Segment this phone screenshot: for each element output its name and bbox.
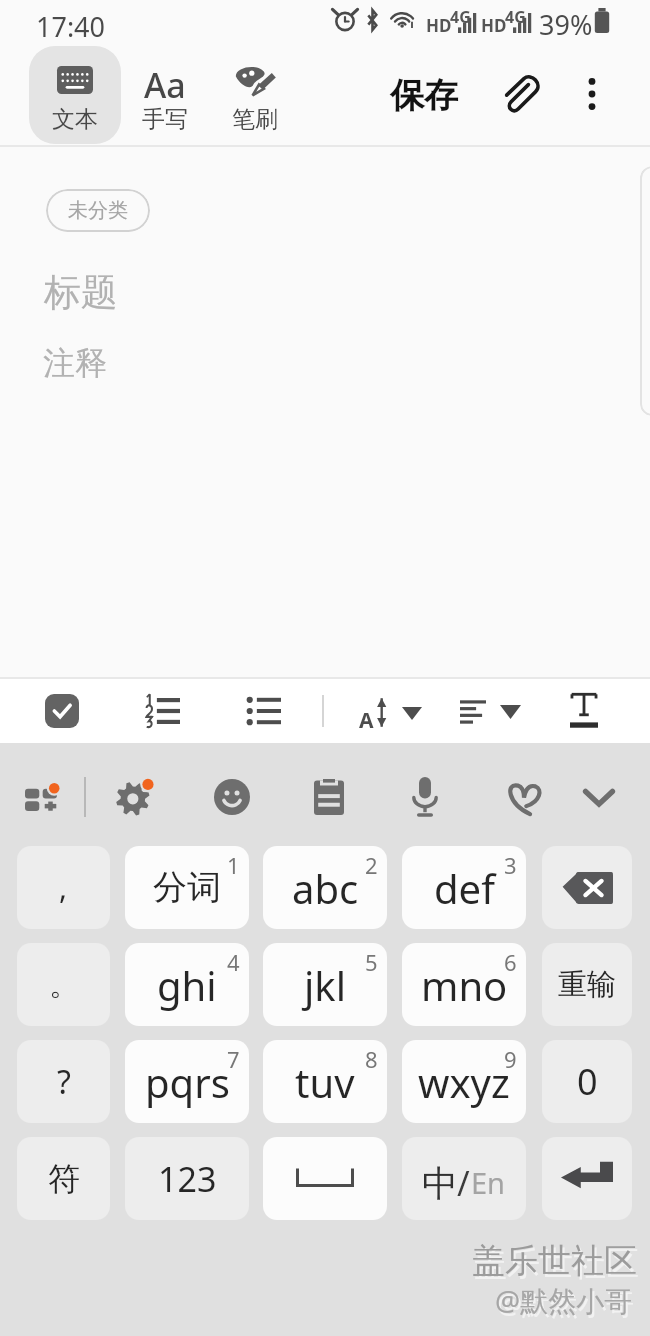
button[interactable]: Emoji bbox=[211, 776, 253, 818]
button[interactable]: 保存 bbox=[382, 68, 466, 122]
button[interactable]: More options bbox=[568, 70, 616, 118]
button[interactable]: jkl bbox=[263, 943, 387, 1026]
button[interactable]: Alignment bbox=[456, 690, 528, 734]
staticText: 手写 bbox=[142, 105, 188, 134]
button[interactable]: def bbox=[402, 846, 526, 929]
staticText: pqrs bbox=[145, 1055, 230, 1109]
staticText: 4 bbox=[227, 947, 240, 977]
staticText: 。 bbox=[49, 966, 79, 1004]
staticText: 8 bbox=[365, 1044, 378, 1074]
staticText: 标题 bbox=[44, 269, 118, 316]
staticText: 5 bbox=[365, 947, 378, 977]
button[interactable]: 重输 bbox=[542, 943, 632, 1026]
staticText: 盖乐世社区 bbox=[474, 1243, 639, 1285]
staticText: 2 bbox=[365, 850, 378, 880]
staticText: jkl bbox=[304, 958, 346, 1012]
button[interactable]: Keyboard toolbar bbox=[21, 776, 63, 818]
button[interactable]: , bbox=[17, 846, 110, 929]
button[interactable]: Stickers bbox=[503, 776, 545, 818]
button[interactable]: Clipboard bbox=[308, 776, 350, 818]
staticText: En bbox=[471, 1163, 506, 1202]
staticText: 6 bbox=[504, 947, 517, 977]
button[interactable]: 分词 bbox=[125, 846, 249, 929]
staticText: 39% bbox=[539, 6, 593, 43]
staticText: 4G bbox=[450, 6, 471, 28]
staticText: 中 bbox=[422, 1161, 458, 1206]
button[interactable]: wxyz bbox=[402, 1040, 526, 1123]
button[interactable]: Attach file bbox=[498, 70, 546, 118]
staticText: wxyz bbox=[418, 1055, 510, 1109]
button[interactable]: 。 bbox=[17, 943, 110, 1026]
button[interactable]: 未分类 bbox=[46, 189, 150, 232]
staticText: @默然小哥 bbox=[497, 1284, 635, 1322]
button[interactable]: 笔刷 bbox=[219, 46, 291, 144]
staticText: mno bbox=[421, 958, 508, 1012]
staticText: / bbox=[457, 1160, 470, 1206]
staticText: 0 bbox=[577, 1057, 598, 1106]
button[interactable]: tuv bbox=[263, 1040, 387, 1123]
staticText: tuv bbox=[295, 1055, 355, 1109]
staticText: , bbox=[59, 867, 68, 908]
button[interactable]: Numbered list bbox=[140, 688, 186, 734]
button[interactable]: ? bbox=[17, 1040, 110, 1123]
staticText: def bbox=[434, 861, 495, 915]
button[interactable]: pqrs bbox=[125, 1040, 249, 1123]
staticText: 1 bbox=[227, 850, 240, 880]
staticText: 9 bbox=[504, 1044, 517, 1074]
staticText: 7 bbox=[227, 1044, 240, 1074]
staticText: ? bbox=[57, 1060, 71, 1104]
staticText: abc bbox=[292, 861, 359, 915]
button[interactable]: Text style bbox=[562, 688, 606, 734]
button[interactable]: Text size bbox=[355, 690, 427, 734]
staticText: 123 bbox=[158, 1156, 217, 1202]
button[interactable]: 文本 bbox=[29, 46, 121, 144]
button[interactable]: mno bbox=[402, 943, 526, 1026]
staticText: 保存 bbox=[390, 74, 458, 117]
button[interactable] bbox=[263, 1137, 387, 1220]
button[interactable]: 中 bbox=[402, 1137, 526, 1220]
staticText: @默然小哥 bbox=[495, 1281, 633, 1319]
staticText: 文本 bbox=[52, 105, 98, 134]
button[interactable]: Bulleted list bbox=[241, 690, 287, 732]
staticText: 3 bbox=[504, 850, 517, 880]
button[interactable]: Aa bbox=[129, 46, 201, 144]
button[interactable]: 123 bbox=[125, 1137, 249, 1220]
button[interactable] bbox=[542, 846, 632, 929]
staticText: 17:40 bbox=[36, 8, 106, 45]
staticText: HD bbox=[426, 14, 452, 37]
staticText: ghi bbox=[157, 958, 217, 1012]
staticText: 分词 bbox=[153, 866, 221, 909]
staticText: 笔刷 bbox=[232, 105, 278, 134]
staticText: A bbox=[359, 706, 374, 735]
button[interactable]: 0 bbox=[542, 1040, 632, 1123]
staticText: 重输 bbox=[558, 966, 616, 1003]
button[interactable] bbox=[114, 776, 156, 818]
button[interactable]: Voice input bbox=[404, 776, 446, 818]
button[interactable]: Checklist bbox=[45, 694, 79, 728]
staticText: 注释 bbox=[43, 343, 107, 383]
button[interactable]: Hide keyboard bbox=[578, 776, 620, 818]
staticText: 盖乐世社区 bbox=[472, 1240, 637, 1282]
staticText: 4G bbox=[505, 6, 526, 28]
button[interactable]: ghi bbox=[125, 943, 249, 1026]
button[interactable]: 符 bbox=[17, 1137, 110, 1220]
button[interactable] bbox=[542, 1137, 632, 1220]
staticText: HD bbox=[481, 14, 507, 37]
staticText: Aa bbox=[144, 62, 186, 108]
staticText: 符 bbox=[48, 1159, 80, 1199]
staticText: 未分类 bbox=[68, 198, 128, 223]
button[interactable]: abc bbox=[263, 846, 387, 929]
